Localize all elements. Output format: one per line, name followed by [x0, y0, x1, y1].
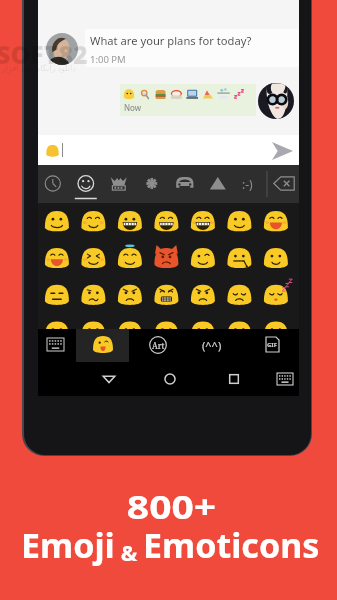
staticText: (^^)	[202, 338, 222, 353]
staticText: دانلود رایگان نرم افزار	[2, 62, 76, 73]
button[interactable]: Send	[272, 142, 293, 160]
button[interactable]: Back	[100, 370, 118, 388]
button[interactable]: Emoji	[46, 144, 59, 157]
staticText: 800+	[127, 485, 217, 529]
button[interactable]: Switch to keyboard	[47, 338, 64, 351]
staticText: Emoji	[21, 522, 115, 568]
button[interactable]: Art	[149, 336, 167, 354]
staticText: Art	[152, 340, 165, 351]
staticText: GIF	[267, 341, 277, 349]
button[interactable]: Home	[161, 370, 179, 388]
button[interactable]: Backspace	[273, 176, 295, 191]
staticText: Now	[124, 102, 142, 113]
button[interactable]	[85, 29, 299, 67]
staticText: 1:00 PM	[90, 53, 126, 66]
staticText: What are your plans for today?	[90, 33, 252, 48]
staticText: &	[115, 537, 143, 567]
staticText: SOFT82	[0, 37, 88, 71]
button[interactable]	[76, 329, 129, 362]
staticText: Emoticons	[143, 522, 320, 568]
staticText: :-)	[242, 176, 253, 192]
button[interactable]: Recents	[225, 370, 243, 388]
button[interactable]: Switch keyboard	[277, 373, 293, 385]
button[interactable]: Now	[120, 84, 256, 116]
button[interactable]: GIF	[265, 336, 280, 353]
